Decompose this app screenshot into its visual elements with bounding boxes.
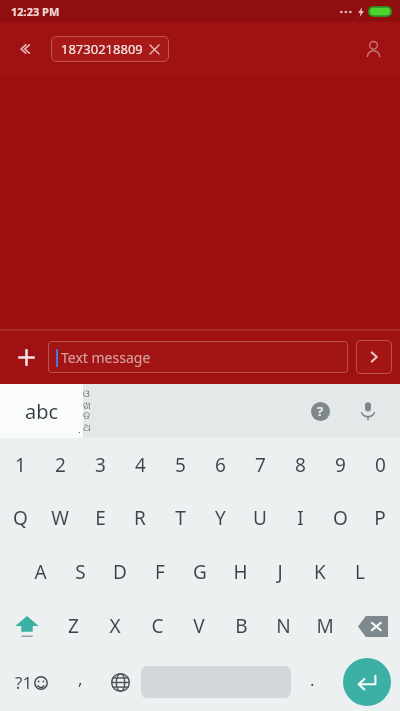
staticText: G [193, 559, 207, 585]
button[interactable]: M [304, 599, 346, 653]
staticText: V [193, 613, 205, 639]
staticText: L [355, 559, 365, 585]
button[interactable]: 4 [120, 438, 160, 491]
button[interactable]: X [94, 599, 136, 653]
button[interactable]: I [280, 491, 320, 545]
button[interactable]: P [360, 491, 400, 545]
staticText: B [235, 613, 248, 639]
staticText: 5 [175, 452, 186, 478]
button[interactable]: B [220, 599, 262, 653]
button[interactable]: Y [200, 491, 240, 545]
staticText: 3 [95, 452, 106, 478]
button[interactable]: Shift [0, 599, 53, 653]
staticText: 12:23 PM [11, 4, 60, 19]
button[interactable]: 0 [360, 438, 400, 491]
button[interactable]: . [291, 653, 333, 711]
staticText: Text message [61, 348, 151, 367]
staticText: P [374, 505, 386, 531]
button[interactable]: Change language [99, 653, 141, 711]
button[interactable]: Contact [354, 30, 392, 68]
staticText: A [34, 559, 47, 585]
button[interactable]: 9 [320, 438, 360, 491]
button[interactable]: Back [6, 31, 42, 67]
staticText: H [233, 559, 248, 585]
button[interactable]: J [260, 545, 300, 599]
button[interactable]: 1 [0, 438, 40, 491]
staticText: 9 [335, 452, 346, 478]
staticText: D [113, 559, 127, 585]
staticText: Z [68, 613, 79, 639]
button[interactable]: Z [53, 599, 94, 653]
button[interactable]: E [80, 491, 120, 545]
button[interactable]: S [60, 545, 100, 599]
staticText: 7 [255, 452, 266, 478]
staticText: C [151, 613, 164, 639]
staticText: J [277, 559, 283, 585]
button[interactable]: A [20, 545, 60, 599]
staticText: I [297, 505, 304, 531]
button[interactable]: abc [0, 384, 83, 438]
staticText: 1 [15, 452, 26, 478]
button[interactable]: W [40, 491, 80, 545]
staticText: 8 [295, 452, 306, 478]
staticText: 0 [375, 452, 386, 478]
button[interactable]: Help [300, 391, 340, 431]
button[interactable]: 3 [80, 438, 120, 491]
button[interactable]: D [100, 545, 140, 599]
button[interactable]: C [136, 599, 178, 653]
button[interactable]: Backspace [346, 599, 400, 653]
staticText: 2 [55, 452, 66, 478]
button[interactable]: R [120, 491, 160, 545]
button[interactable]: 6 [200, 438, 240, 491]
button[interactable]: Enter [333, 653, 400, 711]
button[interactable]: G [180, 545, 220, 599]
staticText: . [310, 668, 315, 691]
staticText: T [175, 505, 186, 531]
button[interactable]: N [262, 599, 304, 653]
button[interactable]: 2 [40, 438, 80, 491]
staticText: K [314, 559, 326, 585]
staticText: O [333, 505, 348, 531]
staticText: Y [215, 505, 226, 531]
staticText: S [75, 559, 86, 585]
button[interactable]: Q [0, 491, 40, 545]
staticText: ?1 [15, 671, 33, 694]
button[interactable]: , [62, 653, 99, 711]
staticText: F [155, 559, 165, 585]
staticText: M [316, 613, 334, 639]
staticText: 18730218809 [61, 40, 143, 58]
staticText: E [95, 505, 106, 531]
staticText: R [134, 505, 146, 531]
staticText: N [276, 613, 291, 639]
button[interactable]: T [160, 491, 200, 545]
button[interactable]: H [220, 545, 260, 599]
staticText: abc [25, 398, 59, 425]
staticText: ? [317, 402, 324, 420]
staticText: X [109, 613, 121, 639]
button[interactable]: K [300, 545, 340, 599]
button[interactable]: Attach [8, 339, 44, 375]
button[interactable]: U [240, 491, 280, 545]
staticText: Q [13, 505, 28, 531]
button[interactable]: Send [356, 340, 392, 374]
button[interactable]: O [320, 491, 360, 545]
button[interactable]: ?1 [0, 653, 62, 711]
button[interactable]: 5 [160, 438, 200, 491]
button[interactable]: F [140, 545, 180, 599]
button[interactable]: Text message [48, 341, 348, 373]
staticText: W [51, 505, 69, 531]
button[interactable]: Voice input [348, 391, 388, 431]
button[interactable]: 7 [240, 438, 280, 491]
staticText: U [253, 505, 267, 531]
staticText: 6 [215, 452, 226, 478]
button[interactable]: V [178, 599, 220, 653]
staticText: 4 [135, 452, 146, 478]
button[interactable]: L [340, 545, 380, 599]
button[interactable]: 8 [280, 438, 320, 491]
button[interactable]: 18730218809 [51, 36, 169, 62]
staticText: , [78, 667, 83, 690]
